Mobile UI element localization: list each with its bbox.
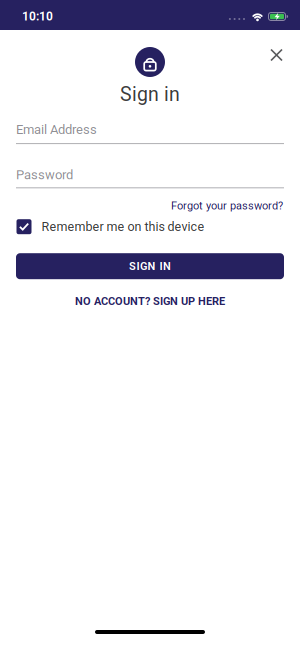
staticText: Email Address [16,122,97,137]
button[interactable]: Forgot your password? [171,199,283,212]
button[interactable]: Remember me on this device [0,219,300,234]
staticText: Password [16,167,73,182]
staticText: NO ACCOUNT? SIGN UP HERE [75,295,225,308]
staticText: SIGN IN [129,260,171,273]
button[interactable]: NO ACCOUNT? SIGN UP HERE [75,295,225,308]
staticText: 10:10 [22,9,53,24]
button[interactable]: Email Address [0,122,300,144]
button[interactable]: Close [266,45,286,65]
staticText: Forgot your password? [171,199,283,212]
button[interactable]: SIGN IN [0,253,300,279]
staticText: Remember me on this device [41,219,204,234]
button[interactable]: Password [0,167,300,188]
staticText: Sign in [120,83,180,106]
